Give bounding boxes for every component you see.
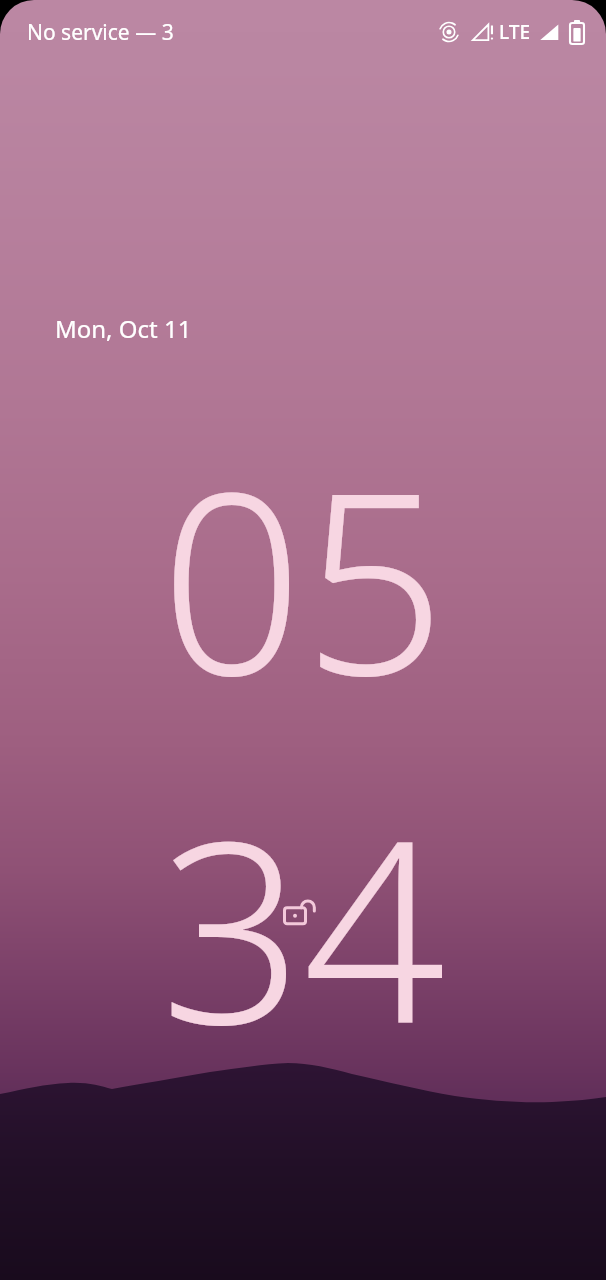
- staticText: 34: [160, 756, 446, 1097]
- staticText: No service — 3: [27, 18, 174, 47]
- staticText: 05: [160, 407, 446, 748]
- button[interactable]: Unlock: [278, 884, 328, 934]
- staticText: Mon, Oct 11: [55, 312, 192, 345]
- staticText: LTE: [499, 19, 531, 45]
